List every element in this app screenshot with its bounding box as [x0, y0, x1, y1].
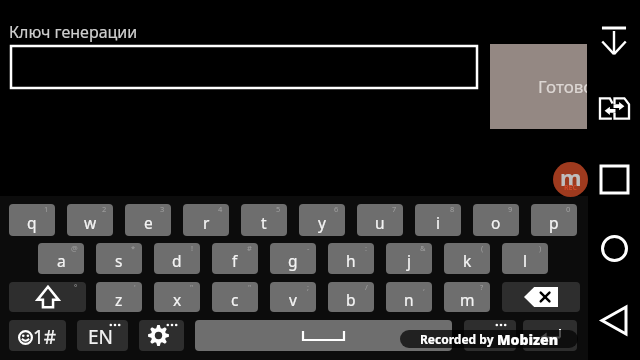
button[interactable]: Switch input method [588, 80, 640, 136]
button[interactable]: Space [195, 320, 452, 351]
staticText: . [487, 321, 493, 347]
staticText: 2 [102, 204, 107, 214]
button[interactable]: i [415, 204, 461, 236]
staticText: EN [88, 324, 114, 350]
staticText: l [523, 250, 527, 271]
button[interactable]: EN [77, 320, 128, 351]
staticText: Recorded by [420, 331, 497, 347]
staticText: s [115, 250, 123, 271]
staticText: f [232, 250, 238, 271]
staticText: c [231, 289, 239, 310]
button[interactable]: q [9, 204, 55, 236]
button[interactable]: d [154, 243, 200, 274]
button[interactable]: n [386, 282, 432, 312]
staticText: m [460, 289, 475, 310]
staticText: e [144, 212, 153, 233]
staticText: ( [481, 243, 484, 253]
button[interactable]: Hide keyboard [588, 10, 640, 70]
button[interactable]: s [96, 243, 142, 274]
staticText: " [248, 282, 252, 292]
button[interactable]: Shift [9, 282, 86, 312]
staticText: o [491, 212, 501, 233]
staticText: Ключ генерации [9, 21, 138, 43]
staticText: ° [74, 282, 78, 292]
staticText: m [560, 162, 582, 192]
staticText: w [84, 212, 97, 233]
button[interactable]: j [386, 243, 432, 274]
button[interactable]: b [328, 282, 374, 312]
staticText: ? [480, 282, 484, 292]
button[interactable]: Mobizen [553, 162, 588, 197]
button[interactable]: r [183, 204, 229, 236]
staticText: v [289, 289, 297, 310]
staticText: y [318, 212, 326, 233]
staticText: 8 [450, 204, 455, 214]
button[interactable]: h [328, 243, 374, 274]
staticText: h [346, 250, 356, 271]
button[interactable]: Emoji and symbols [9, 320, 66, 351]
staticText: 7 [392, 204, 397, 214]
button[interactable]: x [154, 282, 200, 312]
staticText: # [247, 243, 252, 253]
button[interactable]: k [444, 243, 490, 274]
button[interactable]: f [212, 243, 258, 274]
staticText: Mobizen [497, 330, 559, 348]
staticText: 9 [508, 204, 513, 214]
staticText: 0 [566, 204, 571, 214]
staticText: / [365, 282, 368, 292]
button[interactable]: Recent apps [588, 153, 640, 205]
button[interactable]: l [502, 243, 548, 274]
button[interactable]: u [357, 204, 403, 236]
button[interactable]: Home [588, 222, 640, 274]
button[interactable]: e [125, 204, 171, 236]
staticText: n [404, 289, 414, 310]
button[interactable]: Settings [139, 320, 184, 351]
staticText: 6 [334, 204, 339, 214]
staticText: i [436, 212, 440, 233]
staticText: r [203, 212, 210, 233]
staticText: d [172, 250, 182, 271]
staticText: g [288, 250, 298, 271]
staticText: b [346, 289, 356, 310]
staticText: 1# [33, 324, 57, 350]
button[interactable]: o [473, 204, 519, 236]
staticText: x [173, 289, 182, 310]
button[interactable]: Backspace [502, 282, 580, 312]
staticText: t [261, 212, 267, 233]
staticText: @ [71, 243, 78, 253]
button[interactable]: z [96, 282, 142, 312]
staticText: ! [191, 243, 194, 253]
button[interactable]: w [67, 204, 113, 236]
button[interactable]: g [270, 243, 316, 274]
staticText: Готово [538, 75, 587, 98]
staticText: ) [539, 243, 542, 253]
staticText: j [407, 250, 411, 271]
button[interactable] [10, 45, 478, 89]
staticText: " [190, 282, 194, 292]
button[interactable]: Back [588, 294, 640, 346]
button[interactable]: v [270, 282, 316, 312]
button[interactable]: Готово [490, 44, 587, 129]
staticText: k [463, 250, 472, 271]
staticText: 1 [44, 204, 49, 214]
button[interactable]: c [212, 282, 258, 312]
staticText: p [549, 212, 559, 233]
button[interactable]: y [299, 204, 345, 236]
staticText: ' [134, 282, 136, 292]
staticText: - [307, 243, 310, 253]
staticText: ; [307, 282, 310, 292]
button[interactable]: t [241, 204, 287, 236]
staticText: a [57, 250, 66, 271]
button[interactable]: p [531, 204, 577, 236]
staticText: 5 [276, 204, 281, 214]
button[interactable]: Enter [523, 320, 577, 351]
button[interactable]: Period [464, 320, 516, 351]
button[interactable]: a [38, 243, 84, 274]
staticText: u [375, 212, 385, 233]
staticText: , [423, 282, 426, 292]
staticText: * [131, 243, 136, 253]
button[interactable]: m [444, 282, 490, 312]
staticText: 4 [218, 204, 223, 214]
staticText: & [420, 243, 426, 253]
staticText: z [115, 289, 123, 310]
